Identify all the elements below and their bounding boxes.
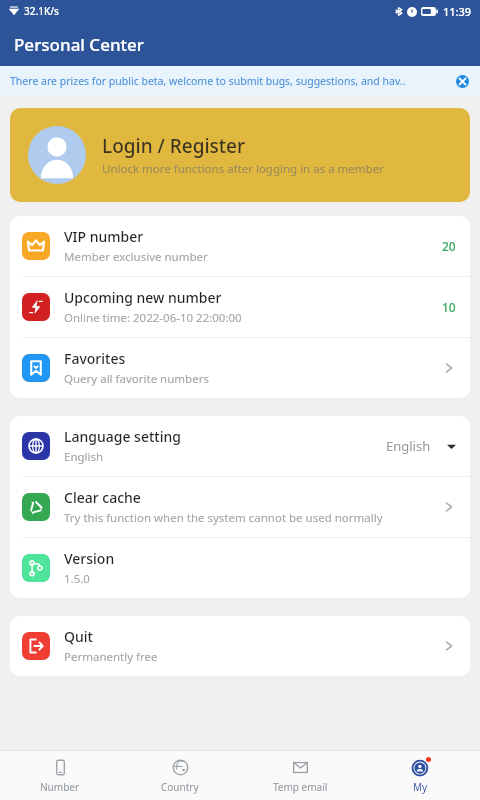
staticText: VIP number xyxy=(64,227,144,246)
staticText: 20 xyxy=(442,238,456,254)
staticText: Version xyxy=(64,549,115,568)
button[interactable]: Clear cache xyxy=(10,477,470,537)
button[interactable]: VIP number xyxy=(10,216,470,276)
staticText: Clear cache xyxy=(64,488,141,507)
button[interactable]: Upcoming new number xyxy=(10,277,470,337)
staticText: Country xyxy=(161,780,199,794)
button[interactable]: Country xyxy=(120,751,240,800)
staticText: English xyxy=(64,449,104,465)
staticText: Online time: 2022-06-10 22:00:00 xyxy=(64,310,242,326)
staticText: 32.1K/s xyxy=(24,4,59,18)
staticText: 10 xyxy=(442,299,456,315)
button[interactable]: Number xyxy=(0,751,120,800)
button[interactable]: Login / Register xyxy=(10,108,470,202)
button[interactable]: Language setting xyxy=(10,416,470,476)
staticText: Try this function when the system cannot… xyxy=(64,510,383,526)
staticText: English xyxy=(386,437,431,455)
staticText: Temp email xyxy=(273,780,328,794)
staticText: Query all favorite numbers xyxy=(64,371,209,387)
staticText: There are prizes for public beta, welcom… xyxy=(10,74,406,88)
button[interactable]: My xyxy=(360,751,480,800)
button[interactable]: Quit xyxy=(10,616,470,676)
button[interactable]: Favorites xyxy=(10,338,470,398)
button[interactable]: Version xyxy=(10,538,470,598)
staticText: Language setting xyxy=(64,427,181,446)
staticText: My xyxy=(413,780,428,794)
staticText: Number xyxy=(40,780,80,794)
staticText: Permanently free xyxy=(64,649,158,665)
staticText: Unlock more functions after logging in a… xyxy=(102,161,384,177)
staticText: Member exclusive number xyxy=(64,249,208,265)
staticText: Quit xyxy=(64,627,93,646)
staticText: Personal Center xyxy=(14,33,145,56)
staticText: Upcoming new number xyxy=(64,288,222,307)
staticText: 1.5.0 xyxy=(64,571,90,587)
button[interactable]: Close banner xyxy=(452,71,472,91)
staticText: 11:39 xyxy=(443,4,472,19)
staticText: Login / Register xyxy=(102,133,246,159)
staticText: Favorites xyxy=(64,349,126,368)
button[interactable]: Temp email xyxy=(240,751,360,800)
